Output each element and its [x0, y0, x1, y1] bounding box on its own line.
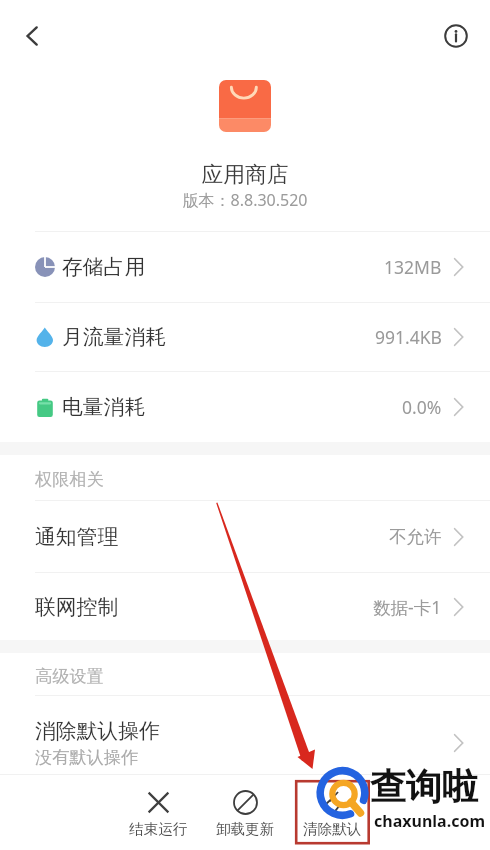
button[interactable]: 通知管理 [0, 501, 490, 572]
staticText: 联网控制 [35, 594, 119, 620]
staticText: 不允许 [389, 526, 442, 548]
staticText: 卸载更新 [216, 820, 275, 838]
staticText: 991.4KB [375, 325, 442, 349]
staticText: 电量消耗 [62, 394, 146, 420]
staticText: 权限相关 [35, 468, 104, 490]
button[interactable]: 电量消耗 [0, 372, 490, 442]
staticText: 存储占用 [62, 254, 146, 280]
button[interactable]: 消除默认操作 [0, 696, 490, 774]
button[interactable]: 月流量消耗 [0, 303, 490, 371]
button[interactable]: 联网控制 [0, 573, 490, 640]
button[interactable]: 结束运行 [115, 775, 202, 850]
staticText: chaxunla.com [374, 810, 485, 832]
staticText: 通知管理 [35, 524, 119, 550]
staticText: 清除默认 [303, 820, 362, 838]
staticText: 132MB [384, 255, 442, 279]
staticText: 结束运行 [129, 820, 188, 838]
staticText: 消除默认操作 [35, 718, 160, 744]
button[interactable]: Back [8, 12, 56, 60]
staticText: 0.0% [402, 395, 442, 419]
staticText: 没有默认操作 [35, 746, 139, 768]
staticText: 查询啦 [370, 764, 478, 809]
button[interactable]: Info [432, 12, 480, 60]
staticText: 数据-卡1 [373, 595, 442, 619]
staticText: 月流量消耗 [62, 324, 166, 350]
staticText: 版本：8.8.30.520 [0, 189, 490, 211]
staticText: 应用商店 [0, 161, 490, 188]
staticText: 高级设置 [35, 665, 104, 687]
button[interactable]: 存储占用 [0, 232, 490, 302]
button[interactable]: 卸载更新 [202, 775, 289, 850]
button[interactable]: 清除默认 [289, 775, 376, 850]
